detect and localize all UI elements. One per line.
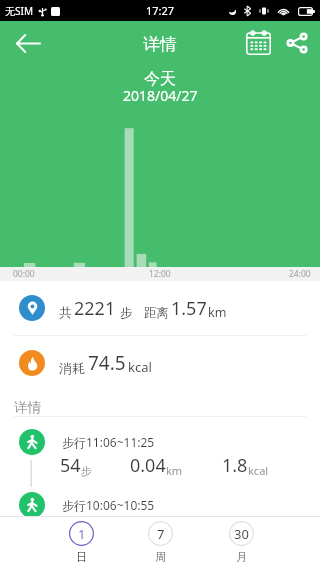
staticText: 1.8 — [222, 453, 248, 478]
staticText: 74.5 — [88, 350, 126, 376]
staticText: kcal — [248, 463, 269, 478]
staticText: 无SIM — [5, 4, 33, 18]
staticText: 月 — [236, 550, 247, 564]
staticText: 00:00 — [13, 268, 35, 280]
button[interactable]: 7 — [135, 521, 185, 564]
button[interactable]: Share — [276, 21, 318, 65]
staticText: 1 — [78, 525, 86, 543]
button[interactable]: 1 — [56, 521, 106, 564]
button[interactable]: 步行11:06~11:25 — [0, 427, 320, 482]
staticText: 步 — [120, 305, 133, 321]
staticText: 24:00 — [289, 268, 311, 280]
staticText: 共 — [59, 305, 72, 321]
button[interactable]: 共 — [0, 281, 320, 335]
staticText: 7 — [157, 525, 165, 543]
staticText: 2018/04/27 — [123, 86, 198, 105]
staticText: km — [208, 304, 227, 321]
staticText: 0.04 — [130, 453, 166, 478]
staticText: 30 — [234, 525, 249, 543]
staticText: kcal — [128, 358, 152, 376]
button[interactable]: 消耗 — [0, 336, 320, 389]
staticText: 2221 — [74, 296, 116, 321]
staticText: 详情 — [14, 399, 41, 416]
staticText: 步行10:06~10:55 — [62, 497, 155, 513]
staticText: 周 — [155, 550, 166, 564]
staticText: 今天 — [144, 69, 176, 89]
staticText: 12:00 — [149, 268, 171, 280]
staticText: km — [166, 463, 183, 478]
staticText: 54 — [60, 453, 81, 478]
staticText: 消耗 — [59, 360, 85, 376]
staticText: 步 — [81, 464, 92, 478]
button[interactable]: Calendar — [236, 21, 280, 65]
staticText: 步行11:06~11:25 — [62, 434, 155, 450]
staticText: 详情 — [143, 34, 177, 55]
button[interactable]: 步行10:06~10:55 — [0, 490, 320, 516]
staticText: 日 — [76, 550, 87, 564]
staticText: 17:27 — [146, 3, 175, 18]
staticText: 1.57 — [171, 296, 207, 321]
button[interactable]: Back — [6, 21, 50, 65]
button[interactable]: 30 — [216, 521, 266, 564]
staticText: 距离 — [144, 305, 169, 321]
